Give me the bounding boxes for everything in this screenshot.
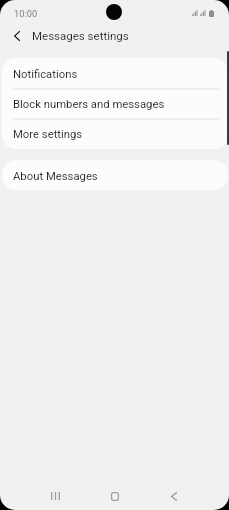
button[interactable]: Recent apps	[38, 479, 72, 510]
button[interactable]: Navigate up	[5, 24, 28, 47]
staticText: Messages settings	[32, 29, 129, 42]
button[interactable]: About Messages	[2, 160, 228, 190]
staticText: More settings	[13, 128, 83, 141]
staticText: About Messages	[13, 170, 98, 183]
staticText: Notifications	[13, 68, 78, 81]
staticText: Block numbers and messages	[13, 98, 165, 111]
button[interactable]: Back	[157, 479, 191, 510]
staticText: 10:00	[14, 8, 38, 19]
button[interactable]: Block numbers and messages	[2, 88, 228, 118]
button[interactable]: Home	[98, 479, 132, 510]
button[interactable]: Notifications	[2, 58, 228, 88]
button[interactable]: More settings	[2, 118, 228, 148]
